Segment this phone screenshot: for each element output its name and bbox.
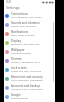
- button[interactable]: Biometrics and security: [4, 74, 55, 83]
- staticText: Accounts and backup: [11, 84, 40, 88]
- button[interactable]: Lock screen: [4, 65, 55, 74]
- button[interactable]: Google: [4, 92, 55, 101]
- staticText: Connections: [11, 12, 28, 16]
- button[interactable]: Connections: [4, 11, 55, 20]
- staticText: Notifications: [11, 30, 29, 34]
- staticText: Lock screen: [11, 66, 27, 70]
- staticText: Google: [11, 93, 21, 97]
- staticText: Themes: [11, 57, 22, 61]
- staticText: Themes, Wallpapers, Icons: [11, 61, 40, 64]
- staticText: Face recognition, Fingerprints: [11, 79, 44, 82]
- staticText: Settings: [6, 5, 20, 10]
- button[interactable]: Accounts and backup: [4, 83, 55, 92]
- staticText: Wallpaper: [11, 48, 25, 52]
- staticText: Google settings: [11, 97, 28, 100]
- button[interactable]: Notifications: [4, 29, 55, 38]
- button[interactable]: Wallpaper: [4, 47, 55, 56]
- staticText: Samsung Cloud, Smart Switch: [11, 88, 44, 91]
- button[interactable]: Themes: [4, 56, 55, 65]
- button[interactable]: Sounds and vibration: [4, 20, 55, 29]
- staticText: Sounds and vibration: [11, 21, 40, 25]
- staticText: Biometrics and security: [11, 75, 43, 79]
- staticText: Wallpaper settings: [11, 52, 32, 55]
- staticText: Block, allow, prioritize: [11, 34, 35, 37]
- staticText: Wi-Fi, Bluetooth, Data usage: [11, 16, 42, 19]
- staticText: 9:41: [6, 0, 12, 4]
- staticText: Screen lock type, Clock style: [11, 70, 42, 73]
- staticText: Sound mode, Ringtone: [11, 25, 36, 28]
- staticText: Brightness, Blue light filter: [11, 43, 40, 46]
- staticText: Display: [11, 39, 21, 43]
- button[interactable]: Display: [4, 38, 55, 47]
